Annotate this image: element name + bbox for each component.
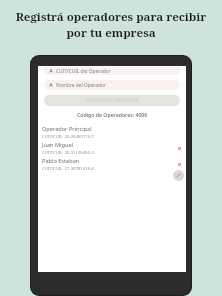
staticText: Juan Miguel (42, 141, 74, 149)
staticText: Código de Operadores: 4006 (77, 111, 148, 118)
staticText: Pablo Esteban (42, 157, 80, 165)
staticText: Registrá operadores para recibir por tu … (12, 9, 210, 40)
button[interactable]: Nombre del Operador (44, 80, 180, 90)
button[interactable]: Operador Principal (38, 124, 186, 140)
button[interactable]: Eliminar operador (175, 144, 183, 152)
staticText: CUIT/CUIL: 20-26480119-7 (42, 134, 94, 140)
button[interactable]: Pablo Esteban (38, 156, 186, 172)
staticText: Nombre del Operador (56, 82, 106, 89)
staticText: REGISTRAR OPERADOR (86, 97, 139, 104)
staticText: Operador Principal (42, 125, 92, 133)
button[interactable]: Editar (173, 170, 184, 181)
staticText: CUIT/CUIL: 20-31126456-3 (42, 150, 94, 156)
button[interactable]: REGISTRAR OPERADOR (44, 95, 180, 106)
button[interactable]: CUIT/CUIL del Operador (44, 67, 180, 75)
staticText: CUIT/CUIL: 27-30781418-4 (42, 166, 94, 172)
button[interactable]: Juan Miguel (38, 140, 186, 156)
staticText: CUIT/CUIL del Operador (56, 68, 111, 75)
button[interactable]: Eliminar operador (175, 160, 183, 168)
